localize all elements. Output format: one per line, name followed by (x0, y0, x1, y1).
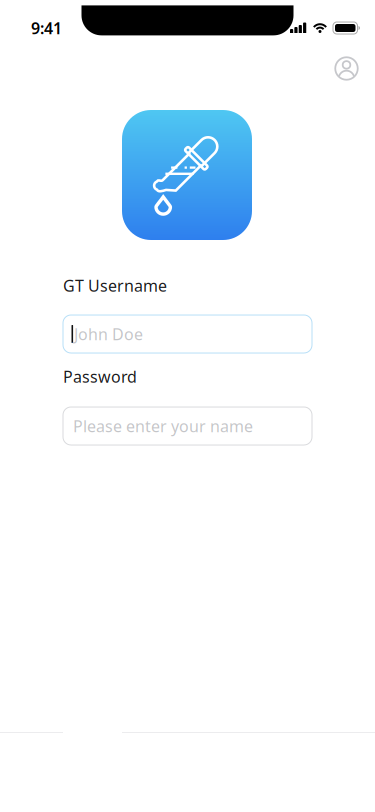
button[interactable]: John Doe (63, 315, 312, 353)
button[interactable]: Account (324, 46, 368, 90)
staticText: 9:41 (31, 17, 62, 39)
staticText: Please enter your name (73, 415, 253, 437)
staticText: GT Username (63, 275, 167, 296)
button[interactable]: Please enter your name (63, 407, 312, 445)
staticText: Password (63, 366, 137, 387)
staticText: John Doe (74, 323, 143, 345)
